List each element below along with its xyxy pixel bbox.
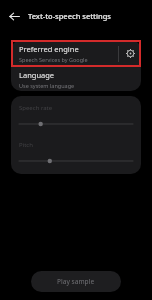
button[interactable]: Back (4, 6, 24, 26)
button[interactable]: Speech rate slider (11, 119, 141, 129)
button[interactable]: Pitch slider (11, 156, 141, 166)
staticText: Preferred engine (19, 44, 79, 54)
button[interactable]: Play sample (31, 271, 121, 292)
button[interactable]: Language (11, 67, 141, 91)
staticText: Pitch (19, 141, 33, 149)
button[interactable]: Preferred engine (11, 40, 141, 67)
button[interactable]: Engine settings (119, 40, 141, 67)
staticText: Play sample (57, 277, 95, 286)
staticText: Language (19, 70, 55, 80)
staticText: Text-to-speech settings (28, 11, 112, 21)
staticText: Speech Services by Google (19, 56, 88, 63)
staticText: Speech rate (19, 104, 53, 112)
staticText: Use system language (19, 82, 75, 89)
